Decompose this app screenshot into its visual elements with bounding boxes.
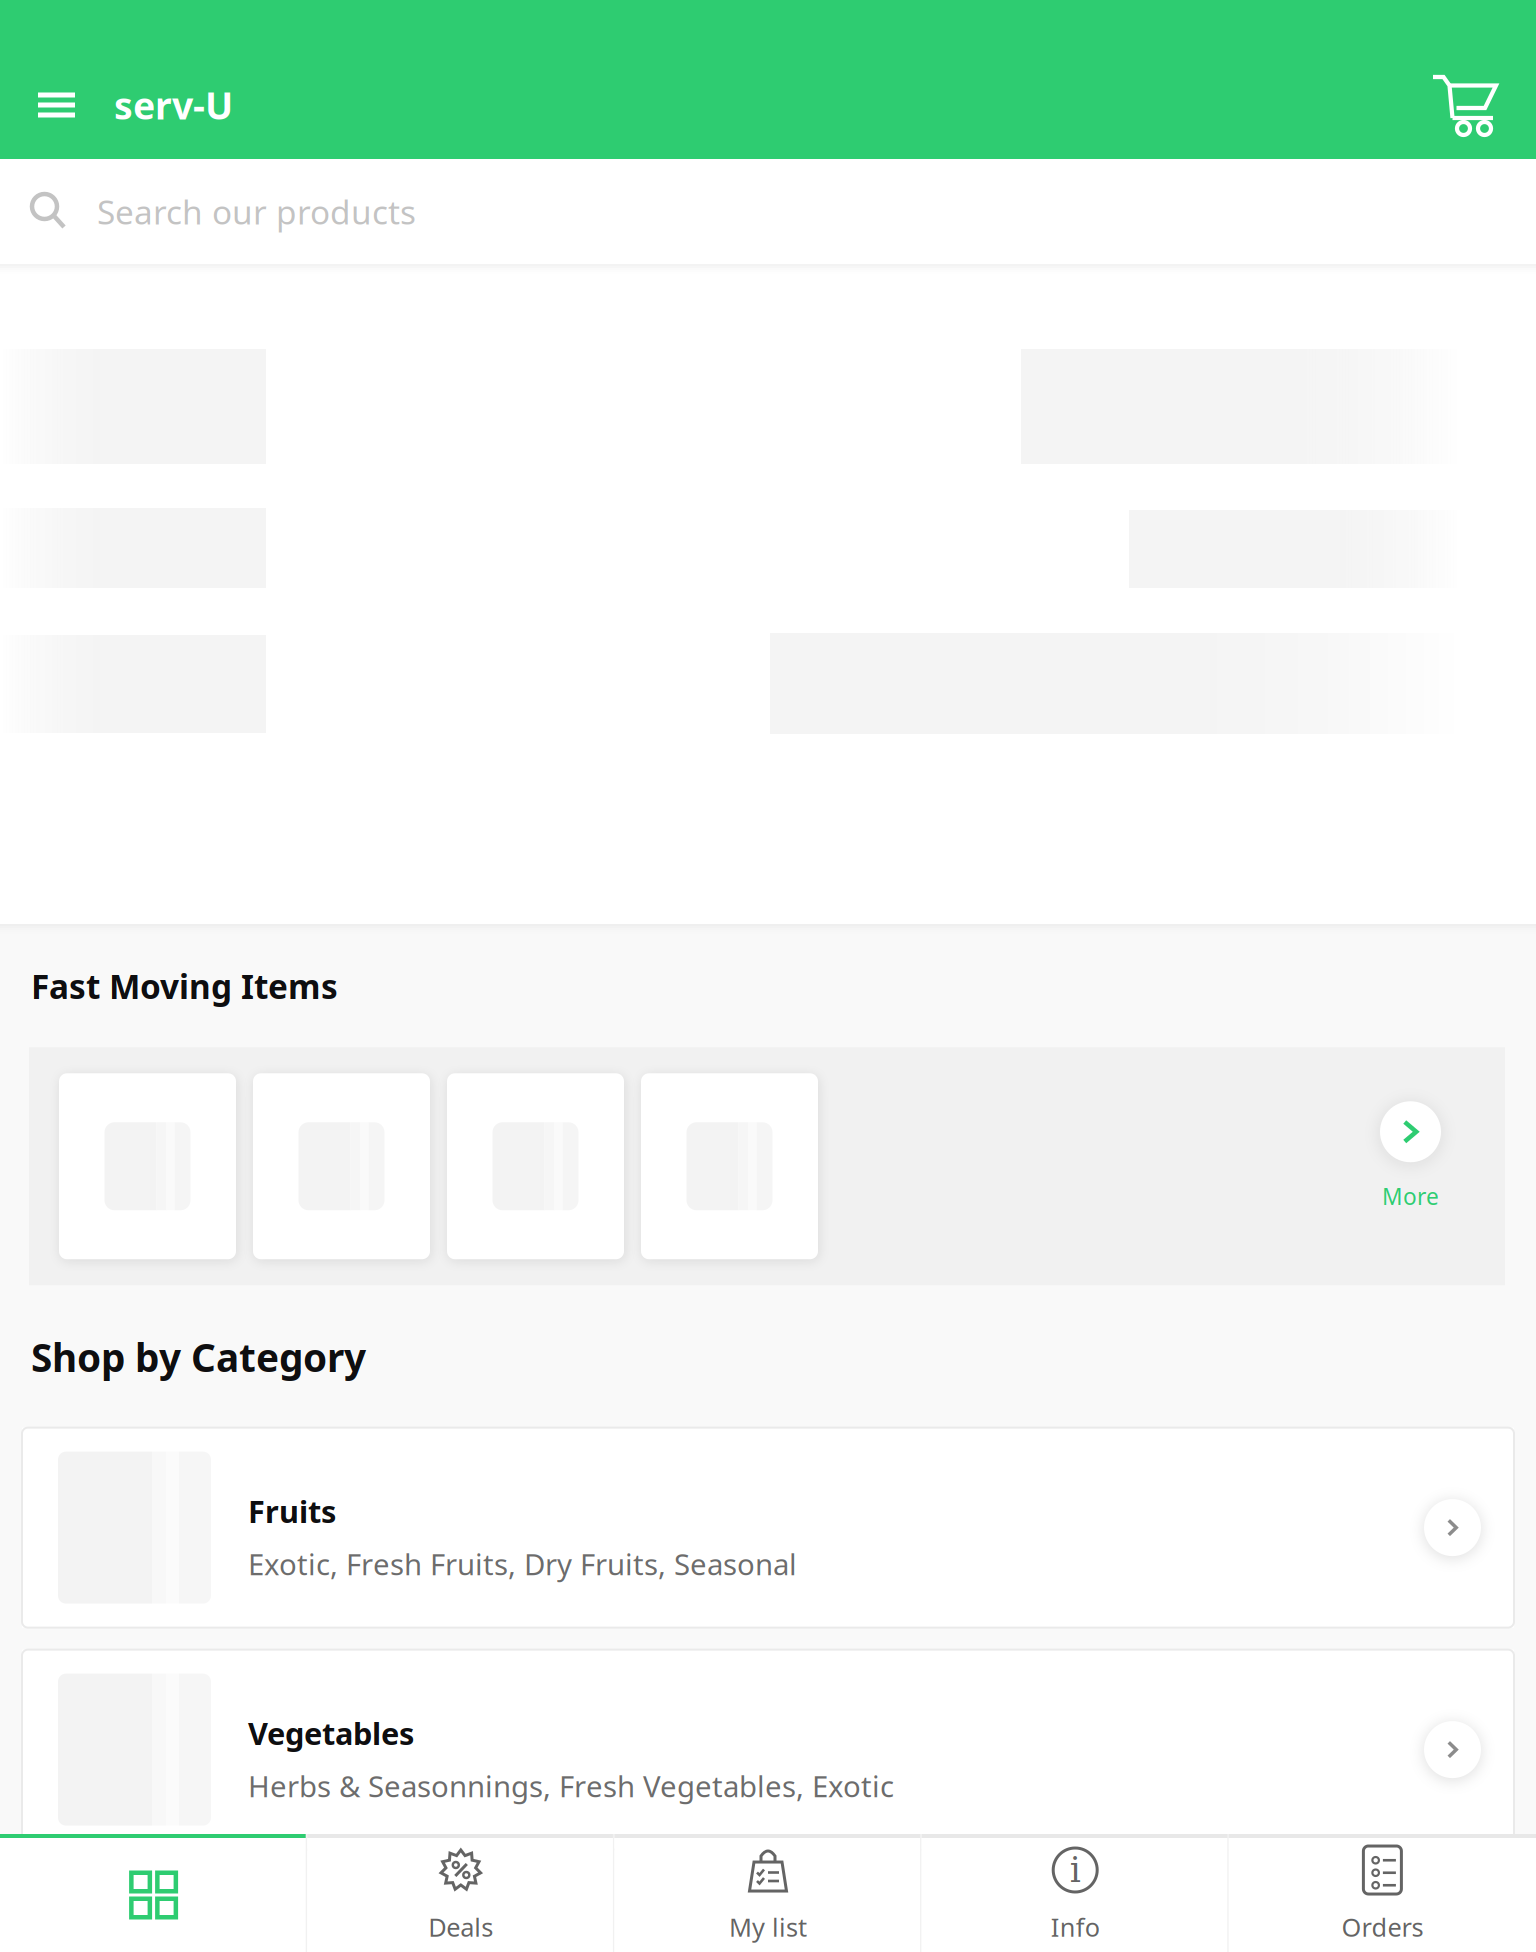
button[interactable]: Deals bbox=[307, 1834, 614, 1952]
button[interactable]: Orders bbox=[1229, 1834, 1536, 1952]
staticText: Fruits bbox=[248, 1491, 336, 1531]
staticText: Orders bbox=[1341, 1910, 1423, 1944]
button[interactable]: Vegetables bbox=[22, 1650, 1514, 1850]
staticText: Vegetables bbox=[248, 1713, 414, 1753]
staticText: Exotic, Fresh Fruits, Dry Fruits, Season… bbox=[248, 1544, 797, 1583]
staticText: Shop by Category bbox=[31, 1331, 366, 1383]
staticText: i bbox=[1070, 1850, 1081, 1890]
staticText: Fast Moving Items bbox=[31, 964, 338, 1008]
button[interactable]: Menu bbox=[0, 66, 94, 144]
staticText: Info bbox=[1051, 1910, 1100, 1944]
button[interactable]: My list bbox=[614, 1834, 922, 1952]
button[interactable]: More bbox=[1380, 1047, 1505, 1285]
staticText: Deals bbox=[428, 1910, 493, 1944]
staticText: Search our products bbox=[97, 189, 416, 234]
staticText: Herbs & Seasonnings, Fresh Vegetables, E… bbox=[248, 1766, 894, 1805]
staticText: serv-U bbox=[114, 80, 233, 130]
button[interactable]: Search our products bbox=[0, 159, 1536, 264]
button[interactable]: Info bbox=[922, 1834, 1229, 1952]
staticText: My list bbox=[729, 1910, 807, 1944]
button[interactable]: serv-U home bbox=[94, 66, 253, 144]
button[interactable]: Cart bbox=[1413, 66, 1536, 144]
staticText: More bbox=[1382, 1181, 1439, 1211]
button[interactable]: Home bbox=[0, 1834, 307, 1952]
button[interactable]: Fruits bbox=[22, 1428, 1514, 1628]
